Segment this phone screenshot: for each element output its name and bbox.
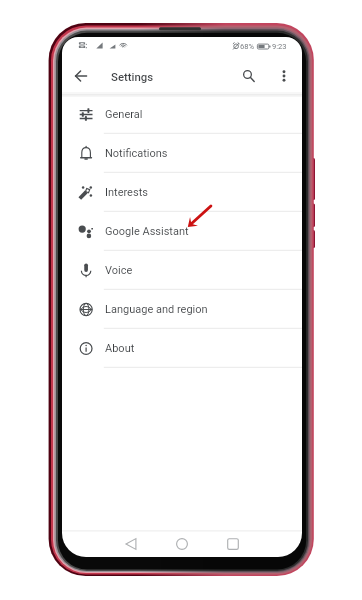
staticText: General <box>105 108 143 121</box>
button[interactable]: Recent apps <box>221 532 245 556</box>
button[interactable]: Interests <box>62 173 302 212</box>
staticText: 68% <box>240 42 255 51</box>
button[interactable]: Home <box>170 532 194 556</box>
button[interactable]: Back <box>69 64 93 88</box>
button[interactable]: Language and region <box>62 290 302 329</box>
button[interactable]: Notifications <box>62 134 302 173</box>
staticText: About <box>105 342 135 355</box>
button[interactable]: Google Assistant <box>62 212 302 251</box>
button[interactable]: More options <box>272 64 296 88</box>
staticText: Language and region <box>105 303 208 316</box>
staticText: Interests <box>105 186 148 199</box>
staticText: Google Assistant <box>105 225 189 238</box>
staticText: Notifications <box>105 147 168 160</box>
staticText: Settings <box>111 70 154 83</box>
button[interactable]: Back <box>119 532 143 556</box>
button[interactable]: Search <box>237 64 261 88</box>
staticText: 9:23 <box>272 42 287 51</box>
button[interactable]: Voice <box>62 251 302 290</box>
staticText: Voice <box>105 264 133 277</box>
button[interactable]: General <box>62 95 302 134</box>
button[interactable]: About <box>62 329 302 368</box>
